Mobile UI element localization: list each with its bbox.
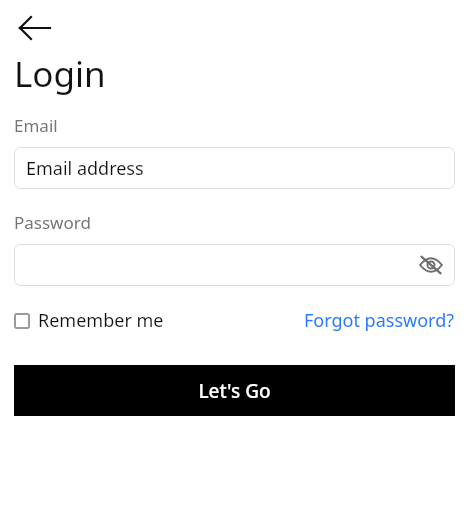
staticText: Password bbox=[14, 211, 91, 234]
staticText: Remember me bbox=[38, 308, 164, 333]
button[interactable]: Let's Go bbox=[14, 365, 455, 416]
button[interactable]: Remember me bbox=[14, 308, 164, 333]
button[interactable]: Email address bbox=[14, 147, 455, 189]
button[interactable]: Show password bbox=[413, 247, 449, 283]
button[interactable]: Forgot password? bbox=[304, 308, 455, 333]
button[interactable]: Back bbox=[14, 10, 62, 46]
staticText: Email bbox=[14, 114, 58, 137]
staticText: Login bbox=[14, 50, 106, 98]
staticText: Let's Go bbox=[198, 378, 271, 404]
staticText: Email address bbox=[26, 156, 144, 181]
staticText: Forgot password? bbox=[304, 308, 455, 333]
button[interactable]: Show password bbox=[14, 244, 455, 286]
